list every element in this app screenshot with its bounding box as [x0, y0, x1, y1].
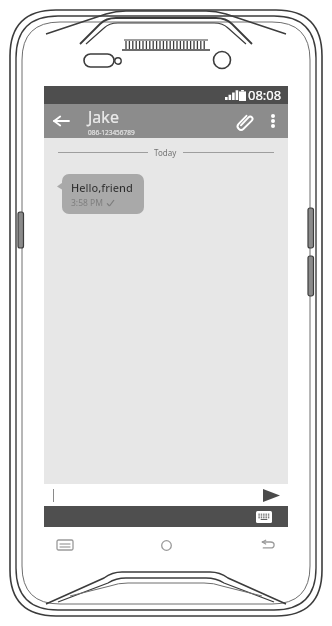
button[interactable]: Jake: [88, 106, 230, 137]
button[interactable]: Hide keyboard: [256, 511, 272, 523]
staticText: 3:58 PM: [71, 197, 103, 209]
button[interactable]: Back: [44, 104, 78, 138]
button[interactable]: More options: [260, 108, 286, 134]
staticText: Jake: [88, 106, 119, 128]
staticText: 086-123456789: [88, 128, 135, 137]
button[interactable]: Recent apps: [52, 534, 78, 556]
button[interactable]: Send: [254, 484, 288, 506]
button[interactable]: Home: [153, 534, 179, 556]
button[interactable]: Hello,friend: [62, 174, 144, 214]
button[interactable]: Back: [254, 534, 280, 556]
staticText: Hello,friend: [71, 180, 133, 195]
staticText: Today: [154, 147, 177, 158]
button[interactable]: Attach file: [230, 106, 260, 136]
staticText: 08:08: [248, 86, 282, 104]
button[interactable]: [44, 484, 254, 506]
